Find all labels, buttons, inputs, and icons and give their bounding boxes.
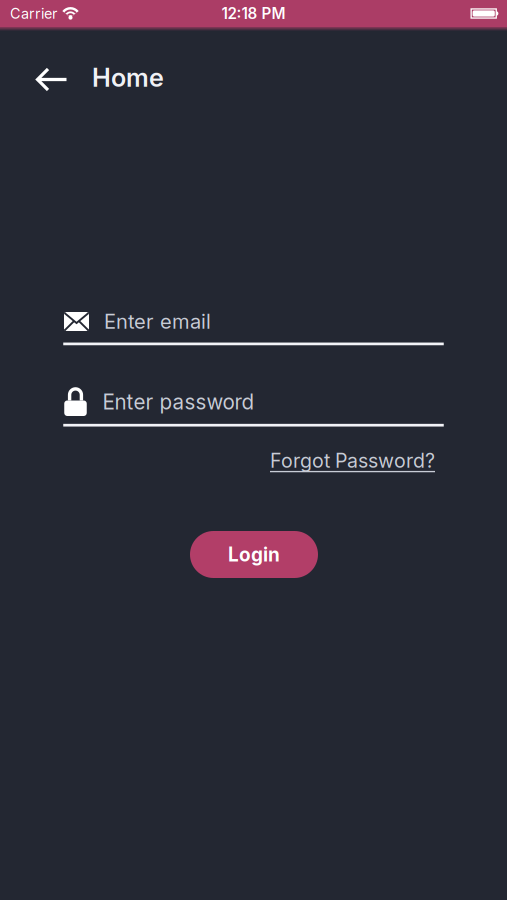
- textField[interactable]: Enter password: [63, 386, 444, 426]
- staticText: Home: [92, 62, 164, 93]
- button[interactable]: Login: [190, 531, 318, 578]
- textField[interactable]: Enter email: [63, 305, 444, 345]
- staticText: Forgot Password?: [270, 449, 435, 472]
- staticText: Enter password: [102, 389, 254, 414]
- staticText: Login: [228, 543, 280, 566]
- staticText: 12:18 PM: [221, 4, 285, 23]
- button[interactable]: Forgot Password?: [270, 449, 435, 472]
- staticText: Enter email: [104, 309, 211, 334]
- button[interactable]: Back: [29, 60, 74, 99]
- staticText: Carrier: [10, 5, 57, 22]
